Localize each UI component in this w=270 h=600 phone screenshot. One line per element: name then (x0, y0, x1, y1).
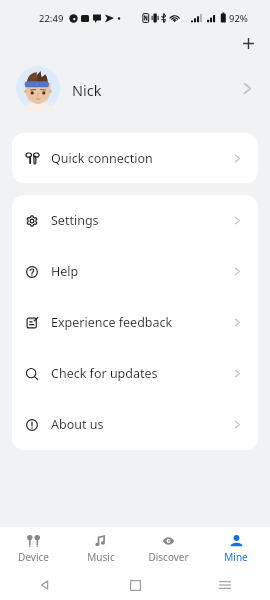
staticText: Quick connection (51, 150, 153, 167)
staticText: Mine (224, 550, 248, 564)
button[interactable]: Add (235, 30, 261, 56)
button[interactable]: Settings (12, 195, 258, 246)
staticText: Settings (51, 212, 99, 229)
button[interactable]: Quick connection (12, 133, 258, 183)
button[interactable]: Discover (134, 527, 202, 570)
staticText: 92% (229, 12, 248, 25)
staticText: Experience feedback (51, 314, 173, 331)
button[interactable]: Experience feedback (12, 297, 258, 348)
button[interactable]: Mine (202, 527, 270, 570)
staticText: Nick (72, 80, 102, 100)
button[interactable]: Help (12, 246, 258, 297)
staticText: Check for updates (51, 365, 158, 382)
button[interactable]: Nick (0, 66, 270, 110)
staticText: Music (87, 550, 115, 564)
button[interactable]: Back (39, 579, 51, 591)
staticText: Device (18, 550, 49, 564)
button[interactable]: Recents (219, 579, 231, 591)
button[interactable]: Device (0, 527, 67, 570)
button[interactable]: Check for updates (12, 348, 258, 399)
button[interactable]: About us (12, 399, 258, 450)
staticText: Discover (148, 550, 189, 564)
staticText: About us (51, 416, 104, 433)
staticText: Help (51, 263, 79, 280)
staticText: 22:49 (39, 12, 64, 25)
button[interactable]: Music (67, 527, 134, 570)
button[interactable]: Home (130, 580, 141, 591)
